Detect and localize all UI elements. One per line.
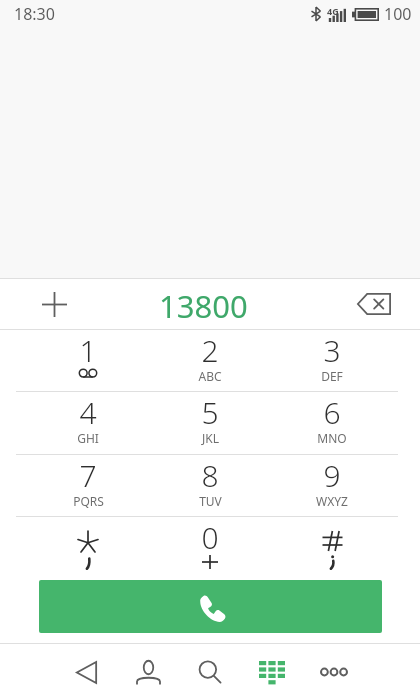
button[interactable]: 7 [27,455,149,516]
button[interactable]: 1 [27,330,149,391]
staticText: 6 [323,392,341,433]
staticText: 18:30 [14,3,55,25]
button[interactable]: 4 [27,392,149,454]
staticText: GHI [77,430,99,446]
button[interactable] [27,517,149,580]
staticText: 1 [79,330,97,371]
staticText: 8 [201,455,219,496]
button[interactable]: Dialpad [241,644,303,700]
staticText: 3 [323,330,341,371]
button[interactable]: 9 [271,455,393,516]
button[interactable]: Contacts [117,644,179,700]
staticText: JKL [202,430,219,446]
staticText: 4 [79,392,97,433]
button[interactable]: 3 [271,330,393,391]
button[interactable]: Delete [328,279,420,329]
button[interactable]: 5 [149,392,271,454]
staticText: ABC [198,368,222,384]
button[interactable] [271,517,393,580]
staticText: 5 [201,392,219,433]
staticText: TUV [199,493,222,509]
staticText: 13800 [159,285,248,327]
staticText: 7 [79,455,97,496]
staticText: WXYZ [316,493,348,509]
button[interactable]: 0 [149,517,271,580]
button[interactable]: More [303,644,365,700]
staticText: 4G [327,5,339,17]
staticText: PQRS [73,493,104,509]
staticText: MNO [317,430,347,446]
staticText: 2 [201,330,219,371]
button[interactable]: 2 [149,330,271,391]
button[interactable]: Search [179,644,241,700]
button[interactable]: 6 [271,392,393,454]
button[interactable]: Back [55,644,117,700]
button[interactable]: Add contact [0,279,108,329]
button[interactable]: Call [39,580,382,633]
staticText: 0 [201,517,219,558]
staticText: 100 [384,3,412,25]
staticText: DEF [321,368,343,384]
button[interactable]: 8 [149,455,271,516]
staticText: 9 [323,455,341,496]
